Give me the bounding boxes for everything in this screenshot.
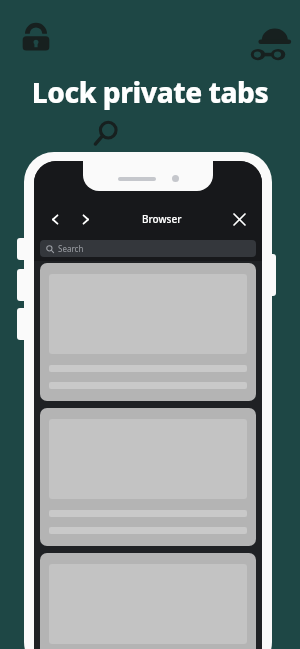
button[interactable]: Back — [42, 206, 68, 232]
button[interactable] — [40, 553, 256, 649]
button[interactable]: Forward — [72, 206, 98, 232]
button[interactable]: Close — [226, 206, 252, 232]
button[interactable] — [40, 408, 256, 546]
button[interactable] — [40, 263, 256, 401]
other: Incognito — [250, 26, 292, 68]
other: Lock — [18, 20, 54, 56]
staticText: Search — [58, 243, 84, 254]
staticText: Browser — [142, 212, 182, 226]
button[interactable]: Search — [40, 240, 256, 257]
staticText: Lock private tabs — [14, 73, 286, 111]
